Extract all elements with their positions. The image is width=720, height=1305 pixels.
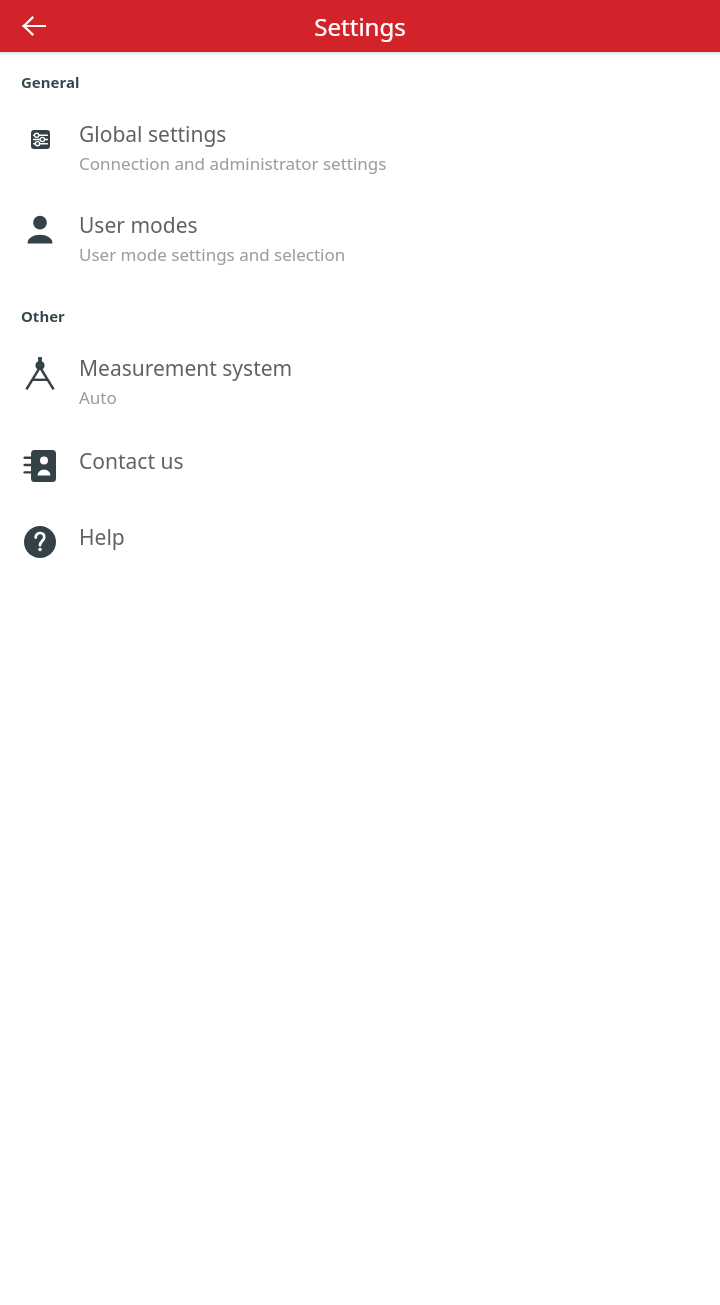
staticText: Connection and administrator settings <box>79 152 387 175</box>
staticText: Contact us <box>79 447 184 476</box>
staticText: Measurement system <box>79 354 293 383</box>
button[interactable]: Global settings <box>0 114 720 181</box>
staticText: Settings <box>0 10 720 43</box>
button[interactable]: Help <box>0 517 720 567</box>
staticText: General <box>21 72 80 92</box>
button[interactable]: Measurement system <box>0 348 720 415</box>
staticText: Help <box>79 523 125 552</box>
staticText: Other <box>21 306 65 326</box>
staticText: User modes <box>79 211 198 240</box>
button[interactable]: Contact us <box>0 441 720 491</box>
button[interactable]: User modes <box>0 205 720 272</box>
button[interactable]: Back <box>10 2 58 50</box>
staticText: Global settings <box>79 120 227 149</box>
staticText: Auto <box>79 386 117 409</box>
staticText: User mode settings and selection <box>79 243 346 266</box>
